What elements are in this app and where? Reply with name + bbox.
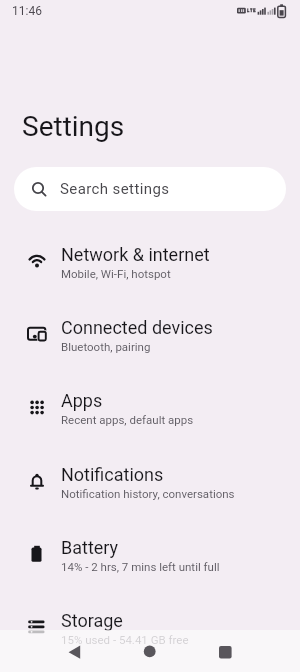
button[interactable]: Storage <box>0 591 300 664</box>
staticText: Bluetooth, pairing <box>61 340 151 353</box>
button[interactable]: Network & internet <box>0 225 300 298</box>
staticText: Settings <box>22 110 125 143</box>
staticText: Notification history, conversations <box>61 487 235 500</box>
staticText: Battery <box>61 537 119 558</box>
staticText: Connected devices <box>61 317 213 338</box>
staticText: Recent apps, default apps <box>61 413 194 426</box>
staticText: 11:46 <box>12 4 42 18</box>
staticText: Storage <box>61 610 123 631</box>
button[interactable]: Apps <box>0 371 300 444</box>
staticText: Mobile, Wi-Fi, hotspot <box>61 267 171 280</box>
button[interactable]: Search settings <box>14 167 286 211</box>
staticText: Notifications <box>61 464 164 485</box>
button[interactable]: Notifications <box>0 445 300 518</box>
staticText: Search settings <box>60 180 170 198</box>
staticText: 14% - 2 hrs, 7 mins left until full <box>61 560 220 573</box>
button[interactable]: Battery <box>0 518 300 591</box>
staticText: 15% used - 54.41 GB free <box>61 633 189 646</box>
staticText: Network & internet <box>61 244 210 265</box>
button[interactable]: Connected devices <box>0 298 300 371</box>
staticText: Apps <box>61 390 103 411</box>
